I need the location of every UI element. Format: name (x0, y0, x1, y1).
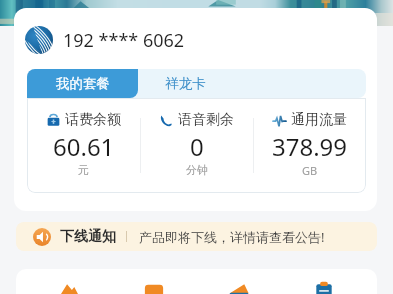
staticText: 元 (78, 163, 89, 177)
button[interactable]: 通用流量 (254, 98, 366, 193)
staticText: 语音剩余 (178, 111, 234, 129)
staticText: 60.61 (53, 130, 115, 163)
staticText: 分钟 (186, 163, 208, 177)
button[interactable]: 话费余额 (27, 98, 140, 193)
button[interactable]: 流量 (207, 269, 271, 294)
button[interactable]: 语音剩余 (141, 98, 253, 193)
button[interactable]: 祥龙卡 (138, 69, 233, 98)
button[interactable]: 192 **** 6062 (25, 18, 185, 62)
staticText: 我的套餐 (56, 75, 110, 92)
staticText: 产品即将下线，详情请查看公告! (139, 228, 325, 246)
staticText: 祥龙卡 (165, 75, 206, 92)
button[interactable]: 账单 (292, 269, 356, 294)
button[interactable]: 下线通知 (16, 222, 377, 251)
button[interactable]: 套餐 (37, 269, 101, 294)
staticText: 话费余额 (65, 111, 121, 129)
staticText: 通用流量 (291, 111, 347, 129)
staticText: GB (302, 163, 318, 178)
staticText: 378.99 (272, 130, 348, 163)
staticText: 192 **** 6062 (63, 28, 185, 53)
staticText: 0 (190, 130, 204, 163)
button[interactable]: 我的套餐 (27, 69, 138, 98)
staticText: 下线通知 (60, 228, 116, 246)
button[interactable]: 充值 (122, 269, 186, 294)
